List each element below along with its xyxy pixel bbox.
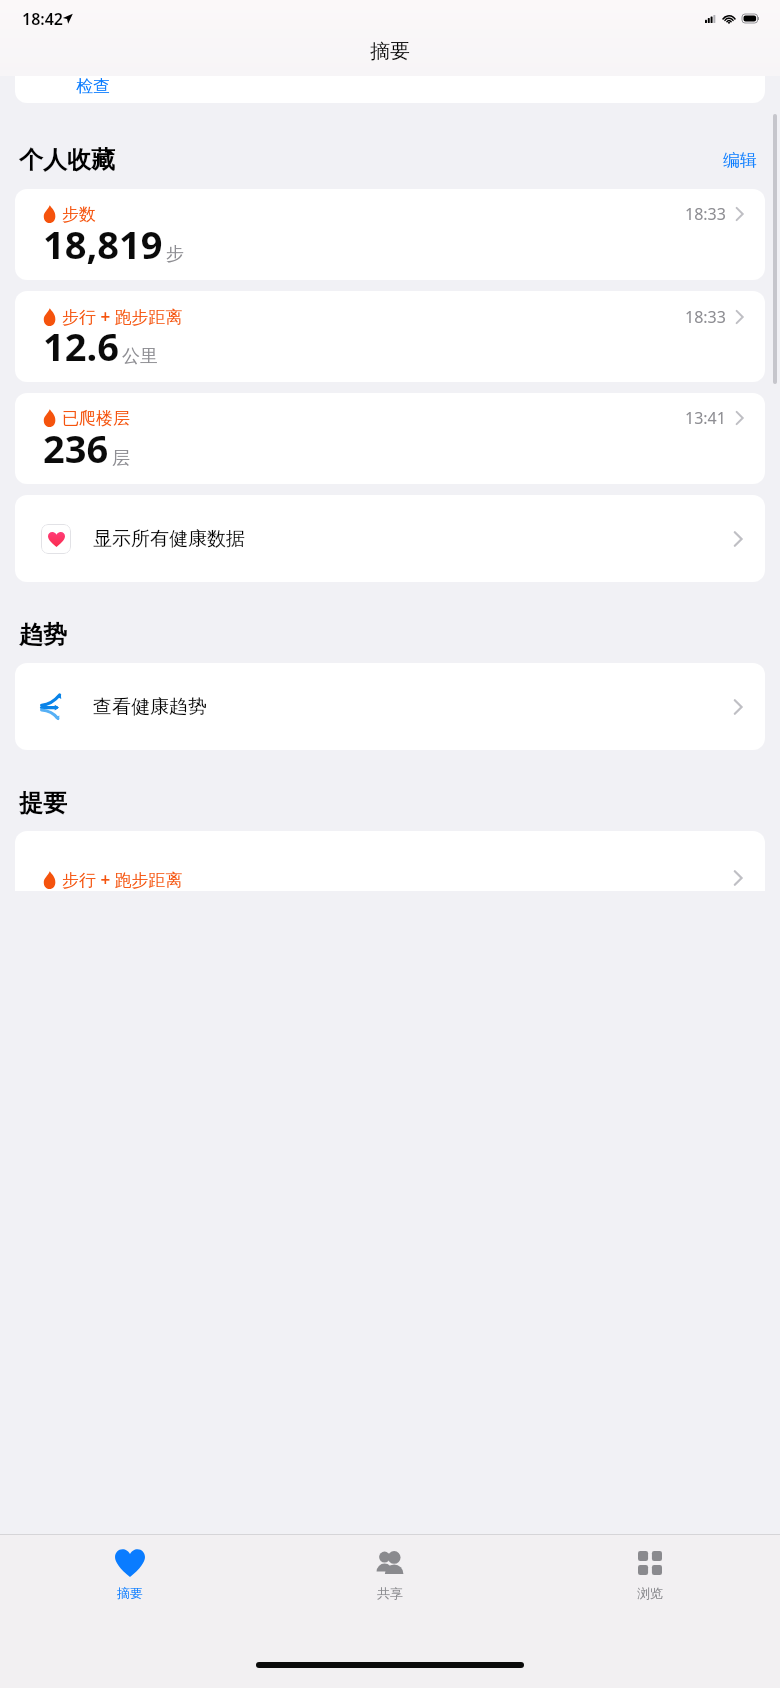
staticText: 18:33 xyxy=(685,306,726,328)
staticText: 已爬楼层 xyxy=(62,408,130,429)
staticText: 步 xyxy=(166,243,184,266)
staticText: 浏览 xyxy=(637,1585,663,1601)
staticText: 趋势 xyxy=(19,620,67,650)
button[interactable]: 编辑 xyxy=(719,146,761,175)
button[interactable]: 查看健康趋势 xyxy=(15,663,765,750)
staticText: 公里 xyxy=(122,345,158,368)
staticText: 步数 xyxy=(62,204,96,225)
staticText: 18:42 xyxy=(22,8,64,30)
staticText: 18:33 xyxy=(685,203,726,225)
staticText: 查看健康趋势 xyxy=(93,695,207,719)
staticText: 12.6 xyxy=(43,320,119,372)
staticText: 18,819 xyxy=(43,218,163,270)
staticText: 13:41 xyxy=(685,407,726,429)
staticText: 层 xyxy=(112,447,130,470)
button[interactable]: 步行 + 跑步距离 xyxy=(15,831,765,891)
staticText: 步行 + 跑步距离 xyxy=(62,868,183,891)
button[interactable]: 步行 + 跑步距离 xyxy=(15,291,765,382)
staticText: 显示所有健康数据 xyxy=(93,527,245,551)
staticText: 摘要 xyxy=(117,1585,143,1601)
staticText: 提要 xyxy=(19,788,67,818)
staticText: 个人收藏 xyxy=(19,145,115,175)
button[interactable]: 步数 xyxy=(15,189,765,280)
button[interactable]: 共享 xyxy=(260,1535,520,1623)
staticText: 236 xyxy=(43,422,109,474)
button[interactable]: 已爬楼层 xyxy=(15,393,765,484)
staticText: 步行 + 跑步距离 xyxy=(62,305,183,328)
button[interactable]: 检查 xyxy=(15,76,765,103)
staticText: 摘要 xyxy=(370,39,410,64)
button[interactable]: 显示所有健康数据 xyxy=(15,495,765,582)
staticText: 共享 xyxy=(377,1585,403,1601)
button[interactable]: 浏览 xyxy=(520,1535,780,1623)
staticText: 编辑 xyxy=(723,150,757,171)
button[interactable]: 摘要 xyxy=(0,1535,260,1623)
staticText: 检查 xyxy=(76,76,110,97)
